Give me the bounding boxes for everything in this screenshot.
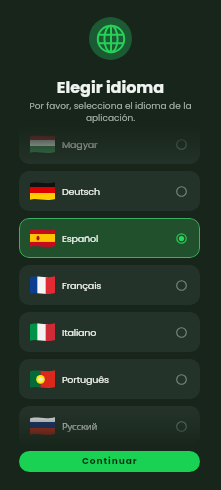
staticText: Elegir idioma — [0, 76, 221, 98]
staticText: Español — [62, 232, 99, 245]
staticText: Русский — [62, 420, 98, 433]
staticText: Continuar — [82, 455, 138, 468]
other: Language — [96, 24, 126, 54]
button[interactable]: Italiano — [19, 312, 200, 352]
button[interactable]: Continuar — [19, 451, 200, 472]
button[interactable]: Deutsch — [19, 171, 200, 211]
staticText: Deutsch — [62, 185, 100, 198]
button[interactable]: Français — [19, 265, 200, 305]
button[interactable]: Español — [19, 218, 200, 258]
staticText: Magyar — [62, 138, 98, 151]
staticText: Français — [62, 279, 102, 292]
button[interactable]: Русский — [19, 406, 200, 446]
button[interactable]: Magyar — [19, 124, 200, 164]
staticText: Italiano — [62, 326, 97, 339]
staticText: Português — [62, 373, 109, 386]
staticText: Por favor, selecciona el idioma de la ap… — [28, 100, 193, 125]
button[interactable]: Português — [19, 359, 200, 399]
